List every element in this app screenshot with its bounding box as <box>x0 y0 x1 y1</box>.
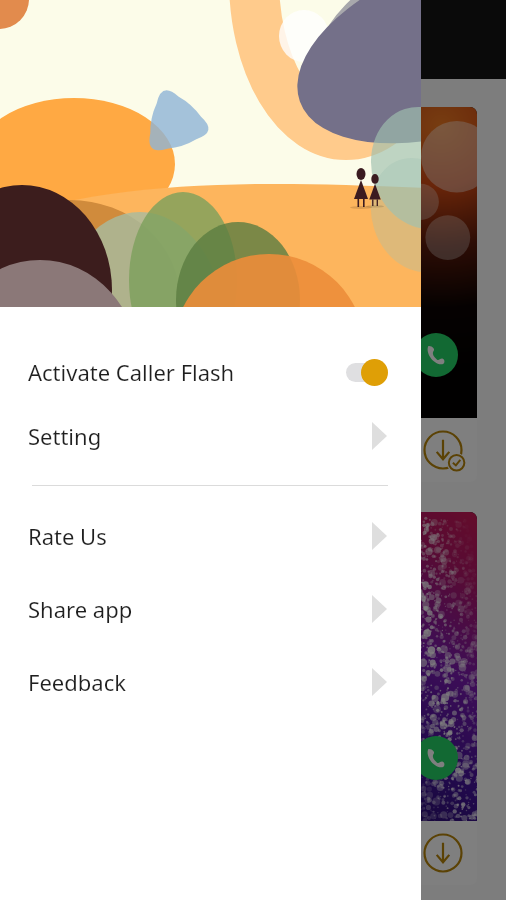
staticText: Setting <box>28 421 102 451</box>
button[interactable]: Rate Us <box>0 510 421 561</box>
other: Download <box>423 833 463 873</box>
button[interactable]: Feedback <box>0 656 421 707</box>
button[interactable]: Activate Caller Flash <box>0 346 421 397</box>
button[interactable]: Setting <box>0 410 421 461</box>
staticText: Rate Us <box>28 521 107 551</box>
staticText: Activate Caller Flash <box>28 357 235 387</box>
button[interactable]: Answer call <box>28 107 477 482</box>
other: Answer call <box>414 736 458 780</box>
other: Answer call <box>414 333 458 377</box>
other: Download <box>423 430 463 470</box>
staticText: Share app <box>28 594 133 624</box>
button[interactable]: Share app <box>0 583 421 634</box>
button[interactable]: Answer call <box>28 512 477 885</box>
staticText: Feedback <box>28 667 126 697</box>
